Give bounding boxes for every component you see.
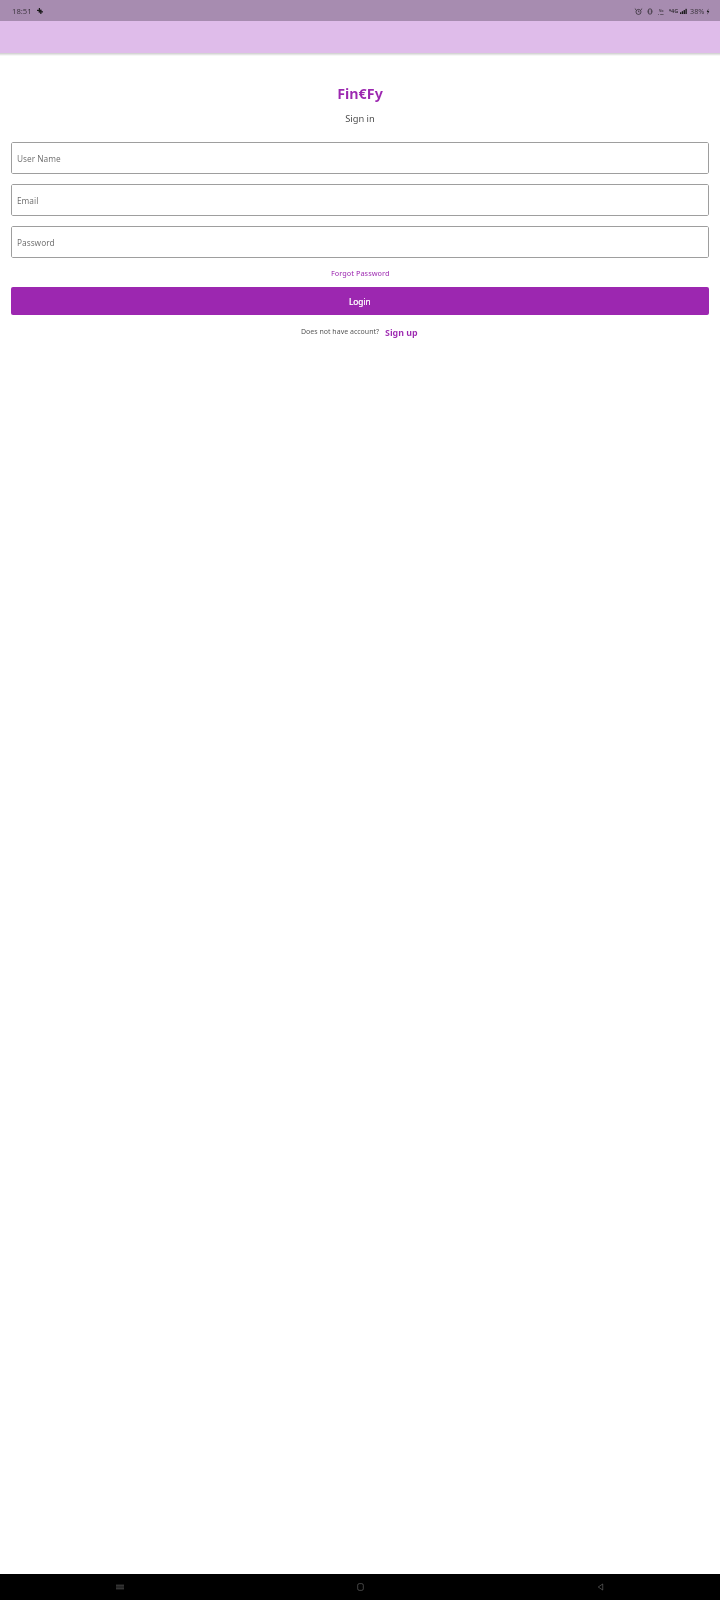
staticText: Sign in	[0, 112, 720, 125]
button[interactable]: Home	[240, 1574, 480, 1600]
staticText: User Name	[17, 153, 61, 164]
button[interactable]: Recents	[0, 1574, 240, 1600]
staticText: Email	[17, 195, 39, 206]
staticText: Does not have account?	[301, 327, 380, 337]
staticText: 38%	[690, 6, 705, 16]
staticText: Vo	[659, 8, 664, 13]
staticText: 18:51	[12, 6, 32, 16]
button[interactable]: Sign up	[384, 324, 419, 340]
button[interactable]: Forgot Password	[0, 264, 720, 282]
button[interactable]: Login	[11, 287, 709, 315]
button[interactable]: Password	[11, 226, 709, 258]
staticText: LTE	[658, 13, 665, 15]
staticText: Sign up	[385, 326, 418, 338]
staticText: 4G	[671, 7, 679, 15]
staticText: Forgot Password	[331, 268, 390, 278]
staticText: Fin€Fy	[0, 84, 720, 103]
button[interactable]: User Name	[11, 142, 709, 174]
staticText: Login	[349, 296, 371, 307]
staticText: Password	[17, 237, 55, 248]
button[interactable]: Email	[11, 184, 709, 216]
